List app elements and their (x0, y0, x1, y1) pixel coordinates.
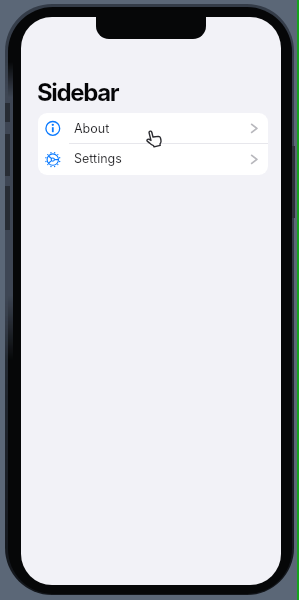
button[interactable]: About (38, 113, 268, 144)
staticText: About (74, 121, 110, 136)
button[interactable]: Settings (38, 144, 268, 175)
staticText: Sidebar (37, 78, 119, 107)
staticText: Settings (74, 151, 122, 166)
